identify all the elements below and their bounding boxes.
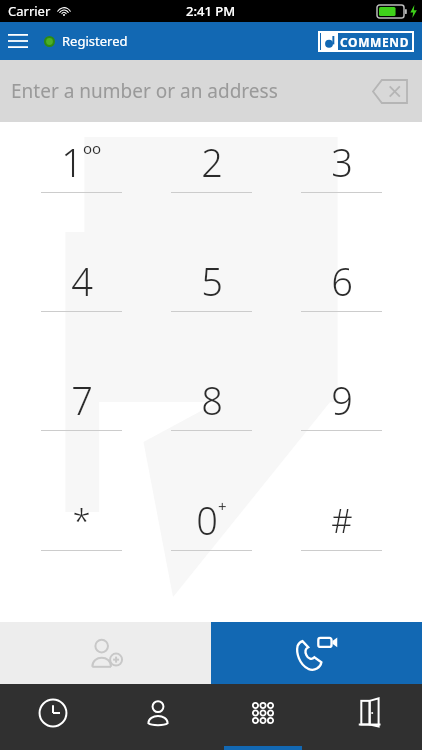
button[interactable]: 9 <box>276 374 406 494</box>
staticText: 6 <box>331 255 353 307</box>
button[interactable]: 8 <box>146 374 276 494</box>
staticText: * <box>72 498 91 543</box>
staticText: 1 <box>61 136 83 188</box>
button[interactable]: 7 <box>16 374 146 494</box>
button[interactable]: Registered <box>44 32 128 50</box>
staticText: 0 <box>196 494 218 546</box>
staticText: # <box>331 498 353 543</box>
button[interactable]: Enter a number or an address <box>0 60 422 122</box>
button[interactable]: Video call <box>211 622 422 684</box>
staticText: 5 <box>201 255 223 307</box>
button[interactable]: Commend logo <box>318 31 414 52</box>
button[interactable]: 5 <box>146 255 276 374</box>
button[interactable]: # <box>276 494 406 614</box>
staticText: COMMEND <box>340 34 410 50</box>
button[interactable]: Exit <box>316 684 422 750</box>
staticText: 8 <box>201 374 223 426</box>
staticText: Registered <box>62 32 128 50</box>
staticText: 4 <box>71 255 93 307</box>
button[interactable]: 0 <box>146 494 276 614</box>
button[interactable]: 4 <box>16 255 146 374</box>
staticText: 3 <box>331 136 353 188</box>
button[interactable]: 1 <box>16 136 146 255</box>
staticText: 9 <box>331 374 353 426</box>
staticText: 2 <box>201 136 223 188</box>
button[interactable]: 6 <box>276 255 406 374</box>
staticText: 2:41 PM <box>186 2 236 20</box>
button[interactable]: Add contact <box>0 622 211 684</box>
staticText: Carrier <box>8 2 51 20</box>
button[interactable]: Backspace <box>370 71 410 111</box>
staticText: Enter a number or an address <box>11 78 278 104</box>
button[interactable]: Keypad <box>210 684 316 750</box>
button[interactable]: 3 <box>276 136 406 255</box>
button[interactable]: Contacts <box>105 684 210 750</box>
staticText: oo <box>83 138 102 158</box>
button[interactable]: 2 <box>146 136 276 255</box>
button[interactable]: Menu <box>0 23 36 59</box>
staticText: 7 <box>71 374 93 426</box>
button[interactable]: Recent calls <box>0 684 105 750</box>
button[interactable]: * <box>16 494 146 614</box>
staticText: + <box>218 496 227 516</box>
